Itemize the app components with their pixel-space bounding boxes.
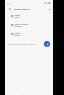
staticText: Memory status: [14, 23, 28, 26]
staticText: Galaxy watch4: [14, 8, 30, 11]
button[interactable]: Next: [44, 41, 50, 47]
button[interactable]: Display: [5, 31, 53, 39]
staticText: 9:41: [7, 2, 11, 5]
button[interactable]: Edit: [47, 7, 51, 11]
staticText: Active: [14, 34, 20, 36]
staticText: Display: [14, 32, 21, 35]
button[interactable]: Recents: [40, 87, 46, 93]
button[interactable]: Memory status: [5, 22, 53, 30]
staticText: Storage: [14, 25, 21, 27]
staticText: Active: [14, 16, 20, 18]
button[interactable]: Profile: [5, 13, 53, 21]
staticText: Recover on Complete on Setup: [8, 43, 36, 46]
button[interactable]: Back: [8, 7, 12, 11]
staticText: Profile: [14, 14, 20, 17]
button[interactable]: Home: [26, 87, 32, 93]
button[interactable]: Back: [13, 87, 19, 93]
